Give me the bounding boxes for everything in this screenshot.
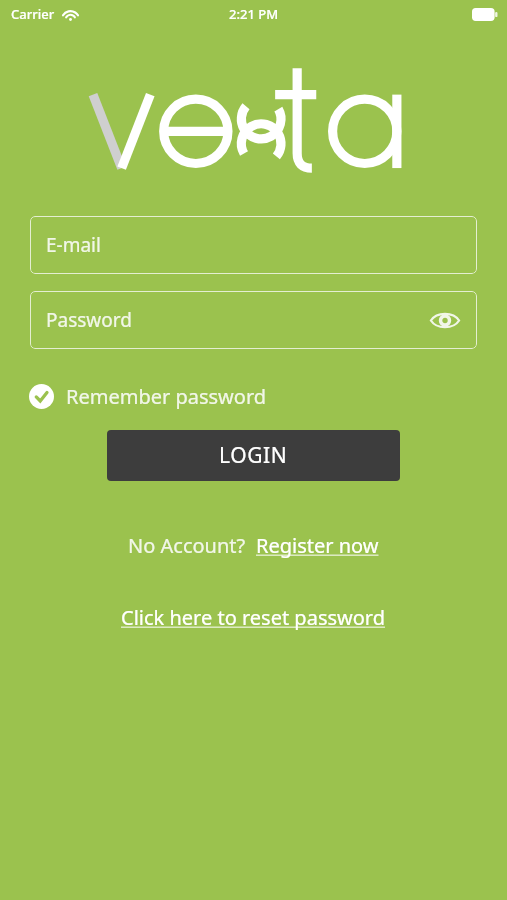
- button[interactable]: LOGIN: [107, 430, 400, 481]
- staticText: Click here to reset password: [121, 604, 386, 631]
- button[interactable]: Click here to reset password: [121, 604, 386, 631]
- staticText: E-mail: [46, 232, 101, 258]
- staticText: 2:21 PM: [229, 5, 279, 23]
- staticText: LOGIN: [219, 441, 288, 470]
- button[interactable]: E-mail: [30, 216, 477, 274]
- staticText: Password: [46, 307, 132, 333]
- button[interactable]: Password: [30, 291, 477, 349]
- button[interactable]: Register now: [256, 532, 379, 559]
- button[interactable]: Show password: [423, 298, 467, 342]
- button[interactable]: Remember password: [29, 379, 267, 413]
- staticText: Remember password: [66, 383, 267, 410]
- staticText: Register now: [256, 532, 379, 559]
- staticText: Carrier: [11, 5, 55, 23]
- staticText: No Account?: [128, 532, 246, 559]
